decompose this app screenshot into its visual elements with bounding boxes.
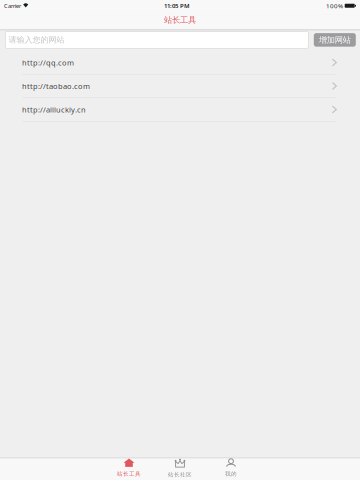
staticText: http://allluckly.cn <box>22 104 86 115</box>
staticText: Carrier <box>4 2 21 9</box>
button[interactable]: http://qq.com <box>0 51 360 74</box>
staticText: http://taobao.com <box>22 81 90 91</box>
staticText: 我的 <box>225 470 237 477</box>
staticText: 100% <box>326 2 343 10</box>
button[interactable]: 增加网站 <box>314 33 356 47</box>
button[interactable]: 站长社区 <box>154 458 205 480</box>
staticText: 站长工具 <box>117 470 141 477</box>
button[interactable]: 我的 <box>205 458 256 480</box>
button[interactable]: http://allluckly.cn <box>0 98 360 121</box>
button[interactable]: http://taobao.com <box>0 74 360 98</box>
staticText: 站长工具 <box>164 15 196 25</box>
staticText: 增加网站 <box>319 35 351 45</box>
staticText: 请输入您的网站 <box>8 35 64 45</box>
button[interactable]: 站长工具 <box>103 458 154 480</box>
staticText: 11:05 PM <box>164 2 190 10</box>
staticText: http://qq.com <box>22 57 74 68</box>
staticText: 站长社区 <box>168 471 192 478</box>
